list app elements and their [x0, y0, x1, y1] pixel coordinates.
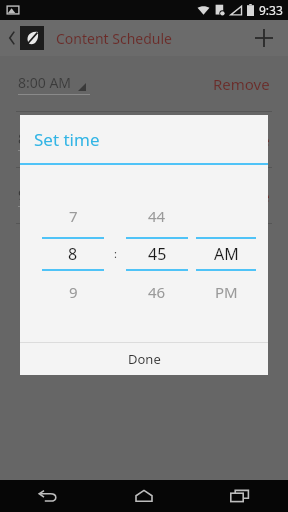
button[interactable]: Done — [20, 343, 268, 375]
staticText: Remove — [213, 74, 270, 94]
staticText: 8:45 AM — [18, 129, 72, 148]
button[interactable]: Remove — [213, 74, 270, 94]
staticText: 9:30 AM — [18, 185, 72, 204]
button[interactable]: Back — [0, 480, 96, 512]
staticText: 9 — [69, 282, 78, 302]
staticText: Done — [128, 350, 161, 368]
button[interactable]: Add — [248, 22, 280, 54]
staticText: 9:33 — [259, 2, 283, 18]
staticText: PM — [215, 282, 238, 302]
staticText: 44 — [148, 206, 166, 226]
staticText: 45 — [148, 243, 167, 265]
staticText: 8:00 AM — [18, 73, 72, 92]
button[interactable]: 44 — [122, 201, 192, 231]
staticText: Remove — [213, 130, 270, 150]
button[interactable]: Remove — [213, 130, 270, 150]
button[interactable]: Recent apps — [192, 480, 288, 512]
staticText: 8 — [68, 243, 78, 265]
staticText: 7 — [69, 206, 78, 226]
button[interactable]: AM — [192, 239, 260, 269]
staticText: Remove — [213, 186, 270, 206]
button[interactable]: 8 — [38, 239, 108, 269]
button[interactable]: 45 — [122, 239, 192, 269]
button[interactable]: 9:30 AM — [0, 168, 288, 223]
button[interactable]: 9 — [38, 277, 108, 307]
button[interactable]: 8:45 AM — [0, 112, 288, 167]
button[interactable]: Remove — [213, 186, 270, 206]
button[interactable]: 7 — [38, 201, 108, 231]
button[interactable]: 46 — [122, 277, 192, 307]
button[interactable]: PM — [192, 277, 260, 307]
button[interactable]: Navigate up — [4, 26, 48, 50]
staticText: Content Schedule — [56, 29, 248, 48]
staticText: 46 — [148, 282, 166, 302]
button[interactable]: Home — [96, 480, 192, 512]
staticText: : — [114, 246, 117, 261]
staticText: Set time — [34, 128, 100, 151]
staticText: AM — [214, 243, 239, 265]
button[interactable]: 8:00 AM — [0, 56, 288, 111]
